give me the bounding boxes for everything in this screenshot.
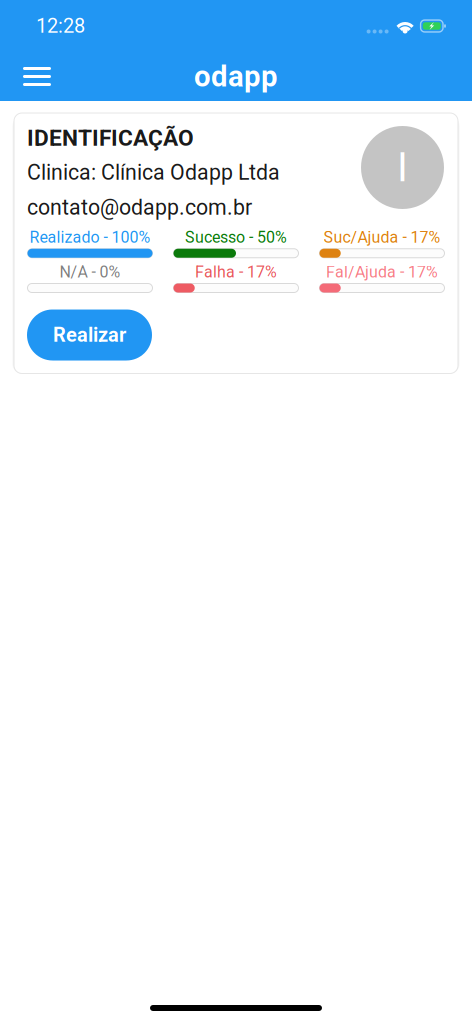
staticText: contato@odapp.com.br (27, 195, 252, 220)
staticText: N/A - 0% (59, 263, 120, 282)
button[interactable]: Realizar (27, 309, 152, 360)
staticText: 12:28 (36, 14, 85, 38)
button[interactable]: Menu (14, 53, 60, 99)
staticText: Fal/Ajuda - 17% (326, 263, 438, 282)
staticText: odapp (194, 59, 278, 94)
staticText: Suc/Ajuda - 17% (323, 228, 440, 247)
staticText: I (397, 144, 408, 191)
staticText: IDENTIFICAÇÃO (27, 125, 194, 151)
staticText: Realizado - 100% (29, 228, 150, 247)
staticText: Clinica: Clínica Odapp Ltda (27, 160, 280, 185)
staticText: Sucesso - 50% (185, 228, 287, 247)
staticText: Falha - 17% (195, 263, 277, 282)
staticText: Realizar (53, 323, 126, 347)
